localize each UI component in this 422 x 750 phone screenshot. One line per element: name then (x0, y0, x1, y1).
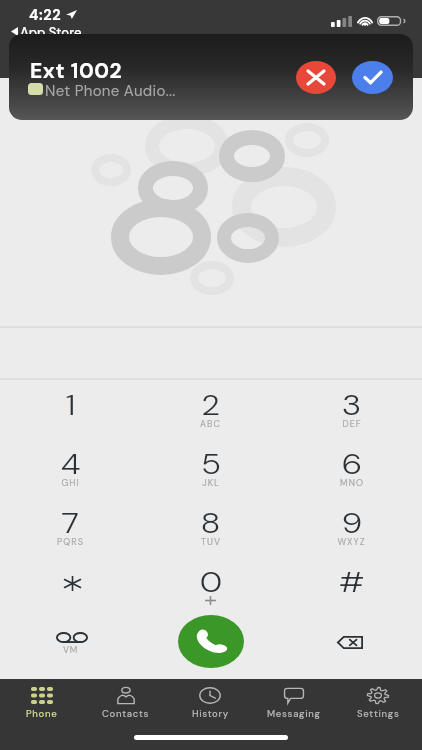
button[interactable]: # (281, 555, 422, 614)
staticText: 5 (200, 446, 222, 482)
button[interactable]: 2 (140, 378, 281, 437)
staticText: Settings (357, 708, 400, 720)
staticText: VM (63, 644, 78, 656)
staticText: MNO (340, 477, 364, 489)
button[interactable]: Phone (0, 679, 84, 727)
button[interactable]: 1 (0, 378, 140, 437)
button[interactable] (0, 555, 140, 614)
staticText: DEF (342, 418, 362, 430)
staticText: Contacts (102, 708, 150, 720)
staticText: 1 (65, 387, 76, 423)
staticText: PQRS (57, 536, 84, 548)
button[interactable]: Voicemail (0, 614, 140, 688)
staticText: 6 (341, 446, 363, 482)
staticText: # (338, 564, 365, 600)
button[interactable]: 0 (140, 555, 281, 614)
staticText: Ext 1002 (30, 57, 123, 84)
staticText: 3 (341, 387, 362, 423)
button[interactable]: Settings (336, 679, 420, 727)
staticText: TUV (201, 536, 221, 548)
button[interactable]: Call (178, 615, 244, 668)
staticText: 0 (199, 564, 223, 600)
button[interactable]: 8 (140, 496, 281, 555)
staticText: WXYZ (337, 536, 366, 548)
button[interactable]: Decline call (296, 61, 336, 94)
button[interactable]: History (168, 679, 252, 727)
staticText: ABC (200, 418, 221, 430)
staticText: Messaging (267, 708, 321, 720)
button[interactable]: 6 (281, 437, 422, 496)
staticText: 4:22 (29, 6, 62, 25)
staticText: 8 (200, 505, 221, 541)
button[interactable]: Backspace (281, 614, 422, 688)
staticText: History (192, 708, 229, 720)
staticText: JKL (202, 477, 220, 489)
staticText: Phone (26, 708, 58, 720)
staticText: 9 (341, 505, 363, 541)
staticText: GHI (61, 477, 80, 489)
button[interactable]: Ext 1002 (9, 34, 413, 120)
button[interactable]: Contacts (84, 679, 168, 727)
button[interactable]: 3 (281, 378, 422, 437)
button[interactable]: 9 (281, 496, 422, 555)
staticText: 4 (60, 446, 81, 482)
staticText: 2 (200, 387, 221, 423)
button[interactable]: Accept call (352, 61, 393, 94)
button[interactable]: 7 (0, 496, 140, 555)
staticText: Net Phone Audio... (45, 81, 176, 101)
staticText: 7 (61, 505, 79, 541)
button[interactable]: 5 (140, 437, 281, 496)
staticText: App Store (20, 24, 82, 41)
button[interactable]: Messaging (252, 679, 336, 727)
button[interactable]: 4 (0, 437, 140, 496)
